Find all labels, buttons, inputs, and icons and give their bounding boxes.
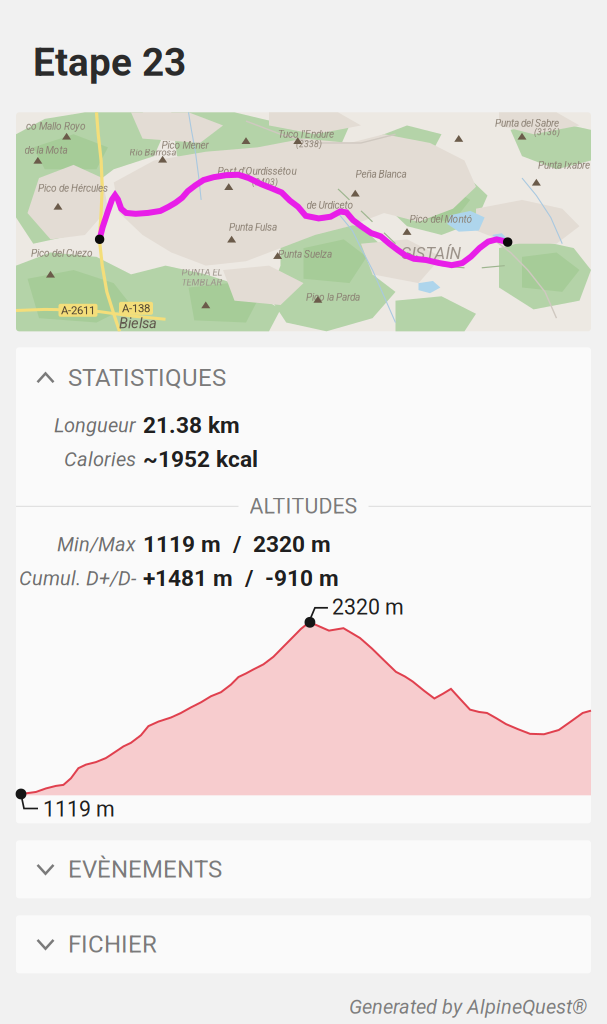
staticText: Port d'Ourdissétou bbox=[217, 165, 296, 177]
staticText: Pico la Parda bbox=[306, 291, 360, 303]
button[interactable]: STATISTIQUES bbox=[16, 347, 591, 408]
staticText: STATISTIQUES bbox=[68, 364, 226, 392]
staticText: Bielsa bbox=[119, 315, 157, 332]
staticText: de Urdiceto bbox=[306, 199, 353, 211]
button[interactable]: FICHIER bbox=[16, 915, 591, 973]
staticText: Pico Mener bbox=[161, 139, 208, 151]
staticText: Punta Ixabre bbox=[538, 159, 590, 171]
staticText: Tuco l'Endure bbox=[278, 128, 334, 140]
staticText: Pico del Cuezo bbox=[31, 247, 93, 259]
staticText: FICHIER bbox=[68, 930, 157, 958]
staticText: co Mallo Royo bbox=[26, 120, 86, 132]
staticText: ALTITUDES bbox=[249, 494, 357, 519]
staticText: 21.38 km bbox=[143, 412, 240, 439]
staticText: Calories bbox=[64, 448, 136, 471]
staticText: Cumul. D+/D- bbox=[19, 567, 136, 590]
staticText: 2320 m bbox=[332, 595, 404, 620]
staticText: GISTAÍN bbox=[400, 243, 461, 263]
staticText: Generated by AlpineQuest® bbox=[349, 995, 587, 1019]
staticText: Longueur bbox=[54, 414, 136, 437]
staticText: (3136) bbox=[534, 127, 560, 137]
staticText: (2338) bbox=[296, 139, 322, 149]
staticText: 1119 m bbox=[43, 797, 115, 822]
staticText: TEMBLAR bbox=[181, 277, 222, 288]
staticText: Punta Suelza bbox=[278, 248, 332, 260]
staticText: Punta Fulsa bbox=[229, 221, 277, 233]
staticText: (2403) bbox=[252, 177, 278, 187]
staticText: Min/Max bbox=[57, 533, 136, 556]
staticText: ~1952 kcal bbox=[143, 446, 258, 473]
staticText: +1481 m / -910 m bbox=[143, 565, 339, 592]
staticText: PUNTA EL bbox=[181, 267, 222, 278]
staticText: A-138 bbox=[122, 302, 150, 315]
button[interactable]: EVÈNEMENTS bbox=[16, 840, 591, 898]
staticText: Peña Blanca bbox=[355, 168, 406, 180]
staticText: Rio Barrosa bbox=[129, 147, 176, 158]
staticText: EVÈNEMENTS bbox=[68, 855, 222, 883]
staticText: 1119 m / 2320 m bbox=[143, 531, 331, 558]
staticText: Pico de Hércules bbox=[38, 182, 108, 194]
staticText: A-2611 bbox=[61, 304, 95, 317]
staticText: Etape 23 bbox=[33, 40, 186, 85]
staticText: Punta del Sabre bbox=[495, 117, 559, 129]
staticText: de la Mota bbox=[24, 144, 67, 156]
staticText: Pico del Montó bbox=[409, 213, 472, 225]
